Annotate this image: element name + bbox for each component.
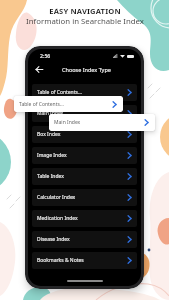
button[interactable]: Back [33,63,46,76]
button[interactable]: Table of Contents... [32,84,137,101]
button[interactable]: Medication Index [32,210,137,227]
button[interactable]: Disease Index [32,231,137,248]
staticText: Information in Searchable Index [26,16,144,27]
staticText: Table Index [37,173,64,180]
staticText: Box Index [37,131,61,138]
staticText: Medication Index [37,215,78,222]
staticText: Bookmarks & Notes [37,257,84,264]
button[interactable]: Calculator Index [32,189,137,206]
button[interactable]: Main Index [49,114,155,131]
staticText: Disease Index [37,236,70,243]
staticText: Table of Contents... [37,89,82,96]
staticText: Calculator Index [37,194,76,201]
staticText: EASY NAVIGATION [49,6,121,16]
staticText: Main Index [37,110,64,117]
button[interactable]: Table of Contents... [14,96,123,112]
button[interactable]: Box Index [32,126,137,143]
staticText: Image Index [37,152,67,159]
button[interactable]: Bookmarks & Notes [32,252,137,269]
staticText: Choose Index Type [62,66,111,73]
staticText: Table of Contents... [19,101,64,108]
staticText: 2:56 [40,52,51,59]
button[interactable]: Table Index [32,168,137,185]
button[interactable]: Main Index [32,105,137,122]
staticText: Main Index [54,119,81,126]
button[interactable]: Image Index [32,147,137,164]
